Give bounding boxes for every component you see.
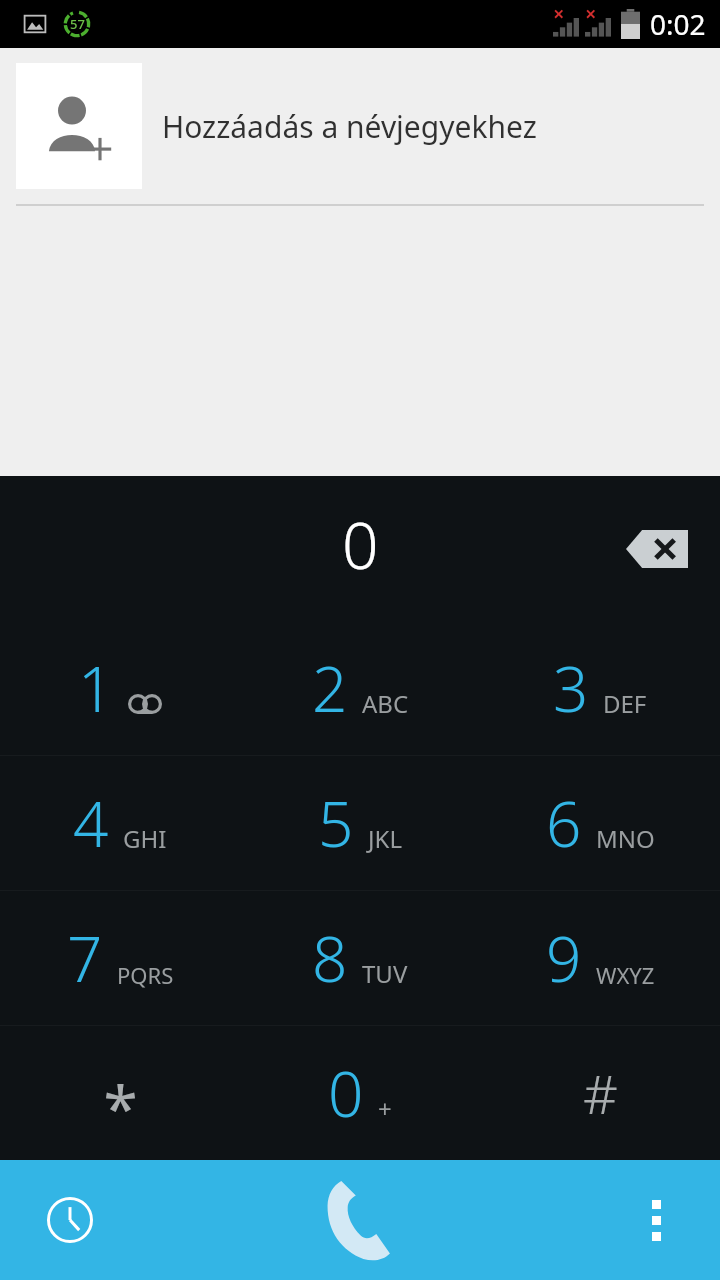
button[interactable]: # — [480, 1026, 720, 1160]
staticText: # — [583, 1056, 618, 1130]
staticText: 5 — [318, 781, 354, 865]
staticText: WXYZ — [596, 960, 655, 990]
button[interactable]: More options — [480, 1160, 720, 1280]
staticText: 3 — [553, 646, 589, 730]
staticText: ABC — [362, 687, 409, 720]
button[interactable]: 3 — [480, 621, 720, 755]
button[interactable]: 1 — [0, 621, 240, 755]
staticText: 1 — [78, 646, 114, 730]
staticText: 6 — [546, 781, 582, 865]
button[interactable]: 5 — [240, 756, 480, 890]
button[interactable]: 4 — [0, 756, 240, 890]
staticText: 7 — [67, 916, 103, 1000]
staticText: PQRS — [117, 960, 174, 990]
button[interactable]: 8 — [240, 891, 480, 1025]
staticText: 0:02 — [650, 5, 706, 43]
button[interactable]: * — [0, 1026, 240, 1160]
staticText: DEF — [603, 687, 647, 720]
button[interactable]: Call history — [0, 1160, 240, 1280]
button[interactable]: Backspace — [612, 509, 702, 589]
staticText: GHI — [123, 822, 167, 855]
staticText: + — [378, 1092, 392, 1125]
staticText: 0 — [328, 1051, 364, 1135]
staticText: TUV — [362, 957, 408, 990]
button[interactable]: 0 — [240, 1026, 480, 1160]
staticText: * — [103, 1065, 138, 1149]
staticText: JKL — [368, 822, 402, 855]
staticText: 0 — [342, 501, 379, 588]
staticText: 4 — [73, 781, 109, 865]
staticText: 2 — [312, 646, 348, 730]
button[interactable]: 6 — [480, 756, 720, 890]
button[interactable]: 2 — [240, 621, 480, 755]
staticText: Hozzáadás a névjegyekhez — [162, 106, 537, 147]
button[interactable]: Dial — [240, 1160, 480, 1280]
button[interactable]: 9 — [480, 891, 720, 1025]
staticText: 57 — [70, 15, 85, 33]
button[interactable]: 7 — [0, 891, 240, 1025]
staticText: 8 — [312, 916, 348, 1000]
button[interactable]: Hozzáadás a névjegyekhez — [0, 48, 720, 204]
staticText: 9 — [546, 916, 582, 1000]
staticText: MNO — [596, 822, 655, 855]
